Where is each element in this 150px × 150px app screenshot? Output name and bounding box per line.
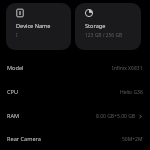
staticText: Rear Camera: [7, 135, 41, 143]
button[interactable]: Storage: [75, 3, 141, 50]
other: Storage: [85, 9, 93, 17]
staticText: RAM: [7, 112, 20, 120]
other: Device: [16, 9, 24, 17]
staticText: Storage: [85, 22, 106, 30]
staticText: Helio G36: [120, 89, 143, 96]
button[interactable]: Device: [6, 3, 71, 50]
staticText: Model: [7, 64, 24, 72]
staticText: I: [16, 32, 18, 39]
button[interactable]: Rear Camera: [0, 128, 150, 150]
staticText: 50M+2M: [122, 136, 143, 143]
staticText: 8.00 GB+5.00 GB: [96, 113, 136, 120]
staticText: 123 GB / 256 GB: [85, 32, 123, 39]
button[interactable]: CPU: [0, 80, 150, 104]
staticText: CPU: [7, 88, 19, 96]
staticText: Infinix X6831: [112, 65, 143, 72]
button[interactable]: RAM: [0, 104, 150, 128]
button[interactable]: Model: [0, 56, 150, 80]
staticText: Device Name: [16, 22, 51, 30]
